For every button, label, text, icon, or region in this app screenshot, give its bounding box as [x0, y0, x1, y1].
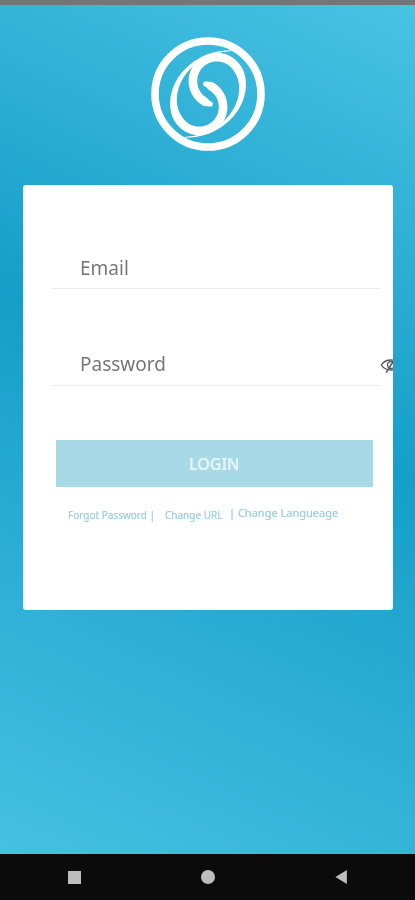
button[interactable]: Back: [322, 858, 360, 896]
button[interactable]: Forgot Password |: [68, 508, 156, 522]
staticText: Email: [80, 255, 129, 281]
button[interactable]: Change URL: [165, 508, 223, 522]
staticText: LOGIN: [189, 453, 240, 475]
button[interactable]: LOGIN: [56, 440, 373, 487]
staticText: Password: [80, 351, 166, 377]
button[interactable]: | Change Langueage: [229, 505, 339, 520]
button[interactable]: Recent apps: [55, 858, 93, 896]
button[interactable]: Show password: [375, 349, 393, 381]
button[interactable]: Home: [189, 858, 227, 896]
